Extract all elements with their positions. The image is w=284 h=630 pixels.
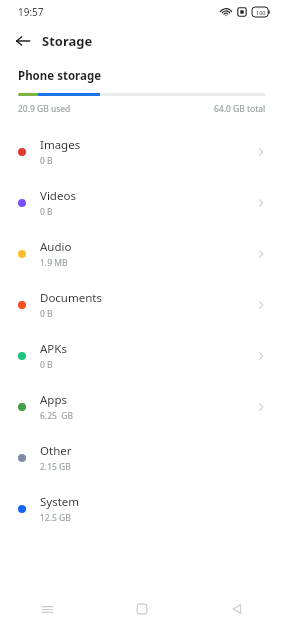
button[interactable]: Audio xyxy=(0,228,284,279)
staticText: 12.5 GB xyxy=(40,512,71,524)
staticText: Audio xyxy=(40,239,72,255)
staticText: 100 xyxy=(256,9,266,16)
staticText: 1.9 MB xyxy=(40,257,68,269)
button[interactable]: System xyxy=(0,483,284,534)
staticText: 2.15 GB xyxy=(40,461,71,473)
staticText: 64.0 GB total xyxy=(214,103,266,115)
staticText: Videos xyxy=(40,188,76,204)
staticText: 20.9 GB used xyxy=(18,103,71,115)
staticText: Other xyxy=(40,443,72,459)
staticText: 0 B xyxy=(40,308,53,320)
button[interactable]: Back xyxy=(189,588,284,630)
button[interactable]: APKs xyxy=(0,330,284,381)
staticText: Phone storage xyxy=(18,68,102,84)
staticText: Documents xyxy=(40,290,102,306)
staticText: Apps xyxy=(40,392,68,408)
button[interactable]: Apps xyxy=(0,381,284,432)
button[interactable]: Documents xyxy=(0,279,284,330)
button[interactable]: Recent apps xyxy=(0,588,94,630)
staticText: System xyxy=(40,494,80,510)
staticText: 0 B xyxy=(40,206,53,218)
staticText: 6.25 GB xyxy=(40,410,73,422)
button[interactable]: Images xyxy=(0,126,284,177)
button[interactable]: Other xyxy=(0,432,284,483)
staticText: Storage xyxy=(42,32,93,50)
staticText: APKs xyxy=(40,341,67,357)
staticText: 0 B xyxy=(40,359,53,371)
button[interactable]: Back xyxy=(8,26,38,56)
button[interactable]: Videos xyxy=(0,177,284,228)
staticText: 0 B xyxy=(40,155,53,167)
staticText: Images xyxy=(40,137,81,153)
button[interactable]: Home xyxy=(94,588,189,630)
staticText: 19:57 xyxy=(18,5,44,19)
